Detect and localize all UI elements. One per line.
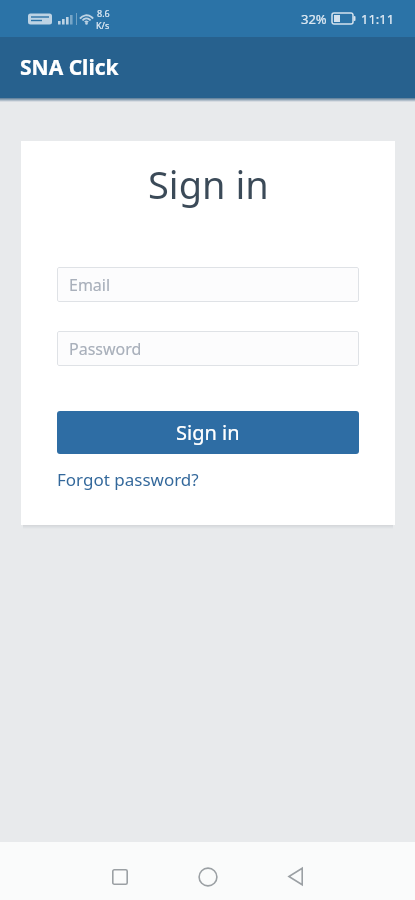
button[interactable] — [179, 853, 237, 900]
staticText: K/s — [96, 19, 110, 31]
staticText: Sign in — [176, 419, 240, 446]
staticText: Forgot password? — [57, 468, 199, 491]
button[interactable] — [91, 853, 149, 900]
staticText: Password — [69, 338, 142, 360]
button[interactable]: Email — [57, 267, 359, 302]
staticText: SNA Click — [20, 53, 119, 82]
button[interactable]: Password — [57, 331, 359, 366]
staticText: 11:11 — [361, 10, 395, 28]
staticText: 32% — [301, 10, 327, 28]
staticText: 8.6 — [97, 7, 110, 19]
staticText: Sign in — [148, 158, 269, 210]
button[interactable] — [267, 853, 325, 900]
button[interactable]: Forgot password? — [57, 468, 199, 491]
button[interactable]: Sign in — [57, 411, 359, 454]
staticText: Email — [69, 274, 111, 296]
